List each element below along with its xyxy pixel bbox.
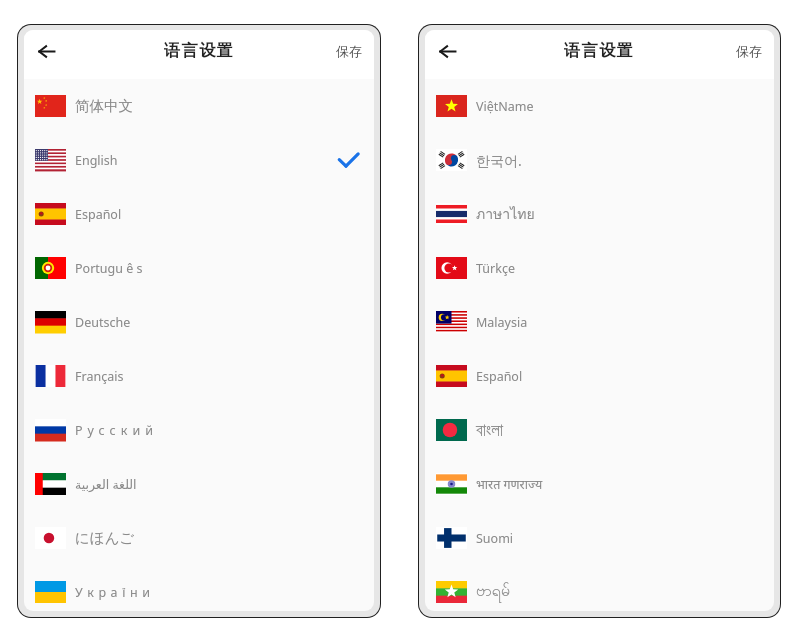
staticText: Türkçe: [476, 260, 515, 277]
button[interactable]: України: [24, 565, 374, 611]
staticText: 한국어.: [476, 151, 522, 170]
staticText: 语言设置: [164, 41, 235, 61]
staticText: Español: [476, 368, 523, 385]
staticText: Portugu ê s: [75, 260, 143, 277]
staticText: 简体中文: [75, 97, 133, 115]
button[interactable]: भारत गणराज्य: [425, 457, 774, 511]
button[interactable]: ဗာရမ်: [425, 565, 774, 611]
button[interactable]: Suomi: [425, 511, 774, 565]
staticText: 保存: [336, 43, 362, 59]
button[interactable]: اللغة العربية: [24, 457, 374, 511]
staticText: বাংলা: [476, 422, 504, 439]
staticText: Español: [75, 206, 122, 223]
button[interactable]: Español: [24, 187, 374, 241]
staticText: भारत गणराज्य: [476, 476, 543, 493]
staticText: English: [75, 152, 118, 169]
button[interactable]: Русский: [24, 403, 374, 457]
button[interactable]: English: [24, 133, 374, 187]
button[interactable]: Deutsche: [24, 295, 374, 349]
staticText: Русский: [75, 422, 158, 439]
staticText: اللغة العربية: [75, 476, 137, 493]
button[interactable]: 保存: [332, 37, 366, 65]
staticText: ภาษาไทย: [476, 203, 535, 225]
staticText: ဗာရမ်: [476, 580, 511, 604]
button[interactable]: Back: [429, 33, 465, 69]
button[interactable]: Portugu ê s: [24, 241, 374, 295]
staticText: 语言设置: [564, 41, 635, 61]
button[interactable]: Malaysia: [425, 295, 774, 349]
staticText: Malaysia: [476, 314, 528, 331]
button[interactable]: 한국어.: [425, 133, 774, 187]
button[interactable]: Türkçe: [425, 241, 774, 295]
button[interactable]: Français: [24, 349, 374, 403]
staticText: Suomi: [476, 530, 514, 547]
button[interactable]: ViệtName: [425, 79, 774, 133]
staticText: にほんご: [75, 529, 135, 547]
button[interactable]: Back: [28, 33, 64, 69]
button[interactable]: ภาษาไทย: [425, 187, 774, 241]
button[interactable]: にほんご: [24, 511, 374, 565]
staticText: ViệtName: [476, 98, 534, 115]
button[interactable]: 保存: [732, 37, 766, 65]
staticText: Deutsche: [75, 314, 131, 331]
staticText: 保存: [736, 43, 762, 59]
button[interactable]: 简体中文: [24, 79, 374, 133]
staticText: Français: [75, 368, 124, 385]
button[interactable]: Español: [425, 349, 774, 403]
button[interactable]: বাংলা: [425, 403, 774, 457]
staticText: України: [75, 584, 155, 601]
